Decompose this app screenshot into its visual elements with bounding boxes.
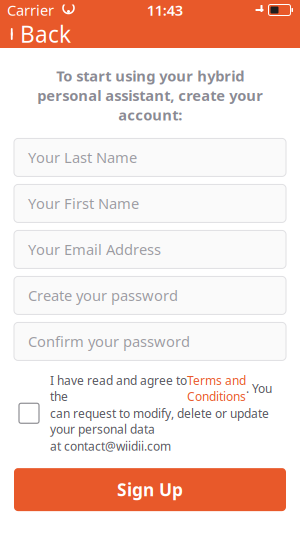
staticText: I have read and agree to the <box>50 372 187 404</box>
staticText: Create your password <box>28 286 178 305</box>
staticText: . You <box>246 380 272 396</box>
staticText: Your First Name <box>28 194 139 213</box>
staticText: Carrier <box>7 0 54 20</box>
staticText: can request to modify, delete or update … <box>50 405 269 437</box>
button[interactable]: Agree to Terms and Conditions <box>14 397 44 429</box>
staticText: Confirm your password <box>28 332 190 351</box>
button[interactable]: Create your password <box>14 276 286 314</box>
button[interactable]: Terms and Conditions <box>187 372 246 404</box>
staticText: Your Last Name <box>28 148 137 167</box>
staticText: at contact@wiidii.com <box>50 438 171 454</box>
staticText: Terms and Conditions <box>187 372 246 404</box>
staticText: Your Email Address <box>28 240 161 259</box>
staticText: Back <box>20 19 71 49</box>
button[interactable]: Your First Name <box>14 184 286 222</box>
button[interactable]: Sign Up <box>14 468 286 511</box>
staticText: Sign Up <box>117 478 183 501</box>
staticText: 11:43 <box>147 0 183 20</box>
button[interactable]: Back <box>0 20 81 48</box>
button[interactable]: Your Email Address <box>14 230 286 268</box>
button[interactable]: Confirm your password <box>14 322 286 360</box>
button[interactable]: Your Last Name <box>14 138 286 176</box>
staticText: To start using your hybrid personal assi… <box>37 66 263 124</box>
